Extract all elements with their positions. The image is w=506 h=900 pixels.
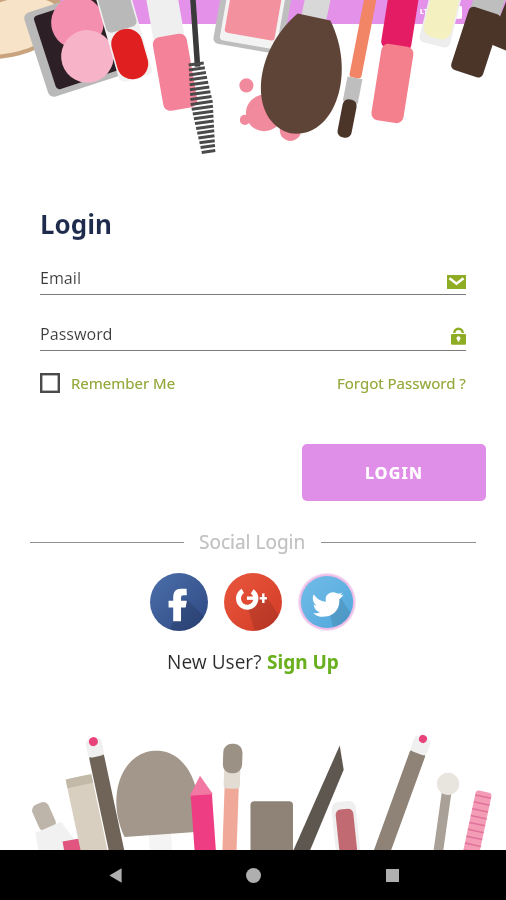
staticText: Sign Up — [267, 649, 339, 675]
button[interactable]: Recent apps — [368, 851, 416, 899]
staticText: 6:18 — [469, 3, 497, 22]
button[interactable]: Sign in with Facebook — [150, 573, 208, 631]
button[interactable]: Sign Up — [267, 649, 339, 675]
button[interactable]: Forgot Password ? — [337, 371, 466, 395]
button[interactable]: Sign in with Twitter — [298, 573, 356, 631]
staticText: Email — [40, 267, 447, 289]
button[interactable]: LOGIN — [302, 444, 486, 501]
staticText: New User? — [167, 649, 267, 675]
staticText: Remember Me — [71, 373, 176, 393]
button[interactable]: Back — [91, 851, 139, 899]
staticText: LOGIN — [365, 462, 424, 484]
button[interactable]: Remember Me — [40, 371, 176, 395]
button[interactable]: Sign in with Google — [224, 573, 282, 631]
button[interactable]: Home — [229, 851, 277, 899]
staticText: Login — [40, 206, 112, 241]
staticText: Password — [40, 323, 451, 345]
staticText: LTE — [420, 7, 432, 17]
staticText: Social Login — [199, 529, 306, 555]
staticText: Forgot Password ? — [337, 373, 466, 393]
